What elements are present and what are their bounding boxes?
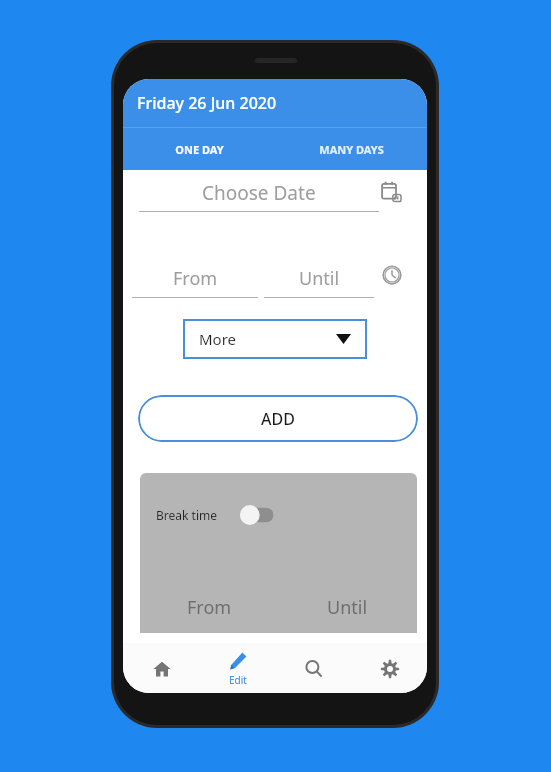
button[interactable]: Pick time	[379, 262, 405, 288]
button[interactable]: Choose Date	[139, 174, 379, 212]
staticText: Friday 26 Jun 2020	[137, 92, 277, 114]
button[interactable]: Break time toggle	[239, 502, 279, 528]
button[interactable]: More	[183, 319, 367, 359]
staticText: More	[199, 329, 237, 349]
button[interactable]: Until	[278, 595, 417, 620]
staticText: ADD	[261, 408, 295, 430]
staticText: Choose Date	[202, 180, 316, 206]
button[interactable]: MANY DAYS	[275, 128, 427, 170]
button[interactable]: Settings	[351, 643, 427, 693]
staticText: MANY DAYS	[319, 142, 384, 157]
button[interactable]: From	[132, 258, 258, 298]
button[interactable]: Until	[264, 258, 374, 298]
button[interactable]: Pick date	[376, 178, 404, 206]
staticText: ONE DAY	[175, 142, 224, 157]
button[interactable]: Home	[123, 643, 199, 693]
staticText: Break time	[156, 507, 217, 523]
button[interactable]: ADD	[138, 395, 418, 442]
button[interactable]: From	[140, 595, 278, 620]
staticText: From	[187, 595, 232, 620]
staticText: Until	[327, 595, 368, 620]
staticText: From	[173, 266, 218, 291]
staticText: Edit	[229, 673, 247, 687]
button[interactable]: Search	[275, 643, 351, 693]
button[interactable]: ONE DAY	[123, 128, 275, 170]
button[interactable]: Edit	[199, 643, 275, 693]
staticText: Until	[299, 266, 340, 291]
